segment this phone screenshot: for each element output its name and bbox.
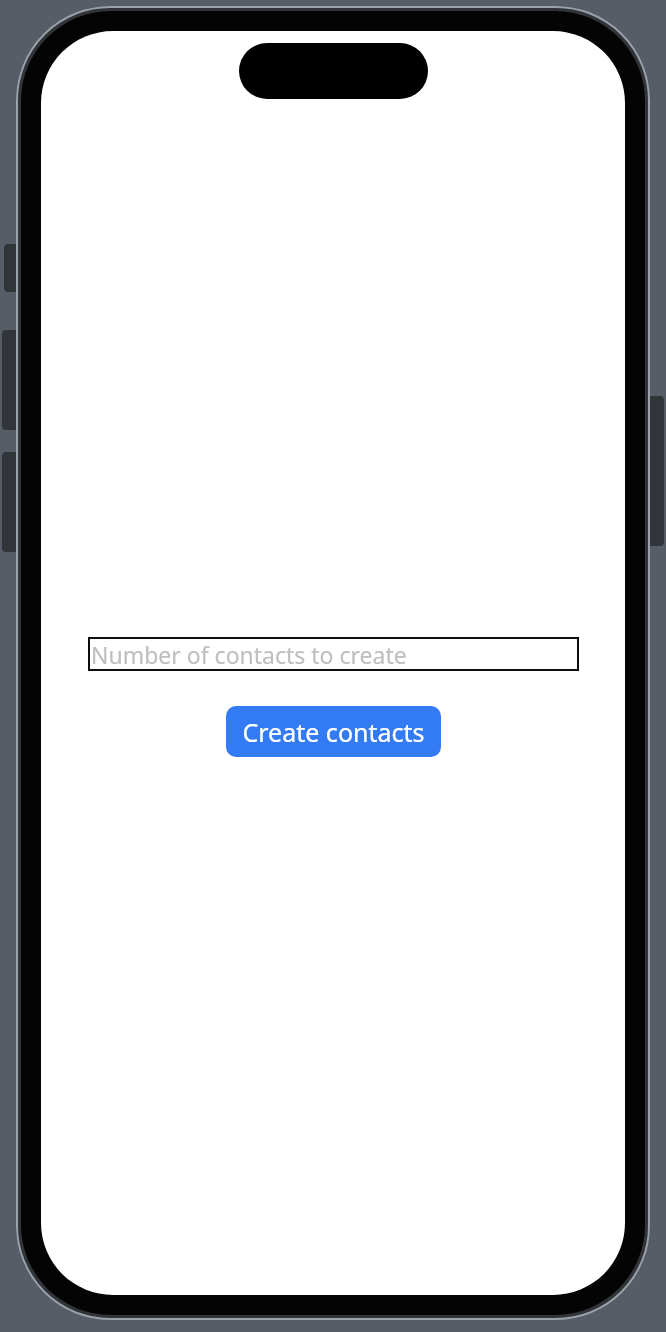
staticText: Create contacts xyxy=(242,715,425,749)
other: Dynamic Island xyxy=(239,43,428,99)
staticText: Number of contacts to create xyxy=(91,639,407,670)
button[interactable]: Create contacts xyxy=(226,706,441,757)
button[interactable]: Number of contacts to create xyxy=(88,637,579,671)
